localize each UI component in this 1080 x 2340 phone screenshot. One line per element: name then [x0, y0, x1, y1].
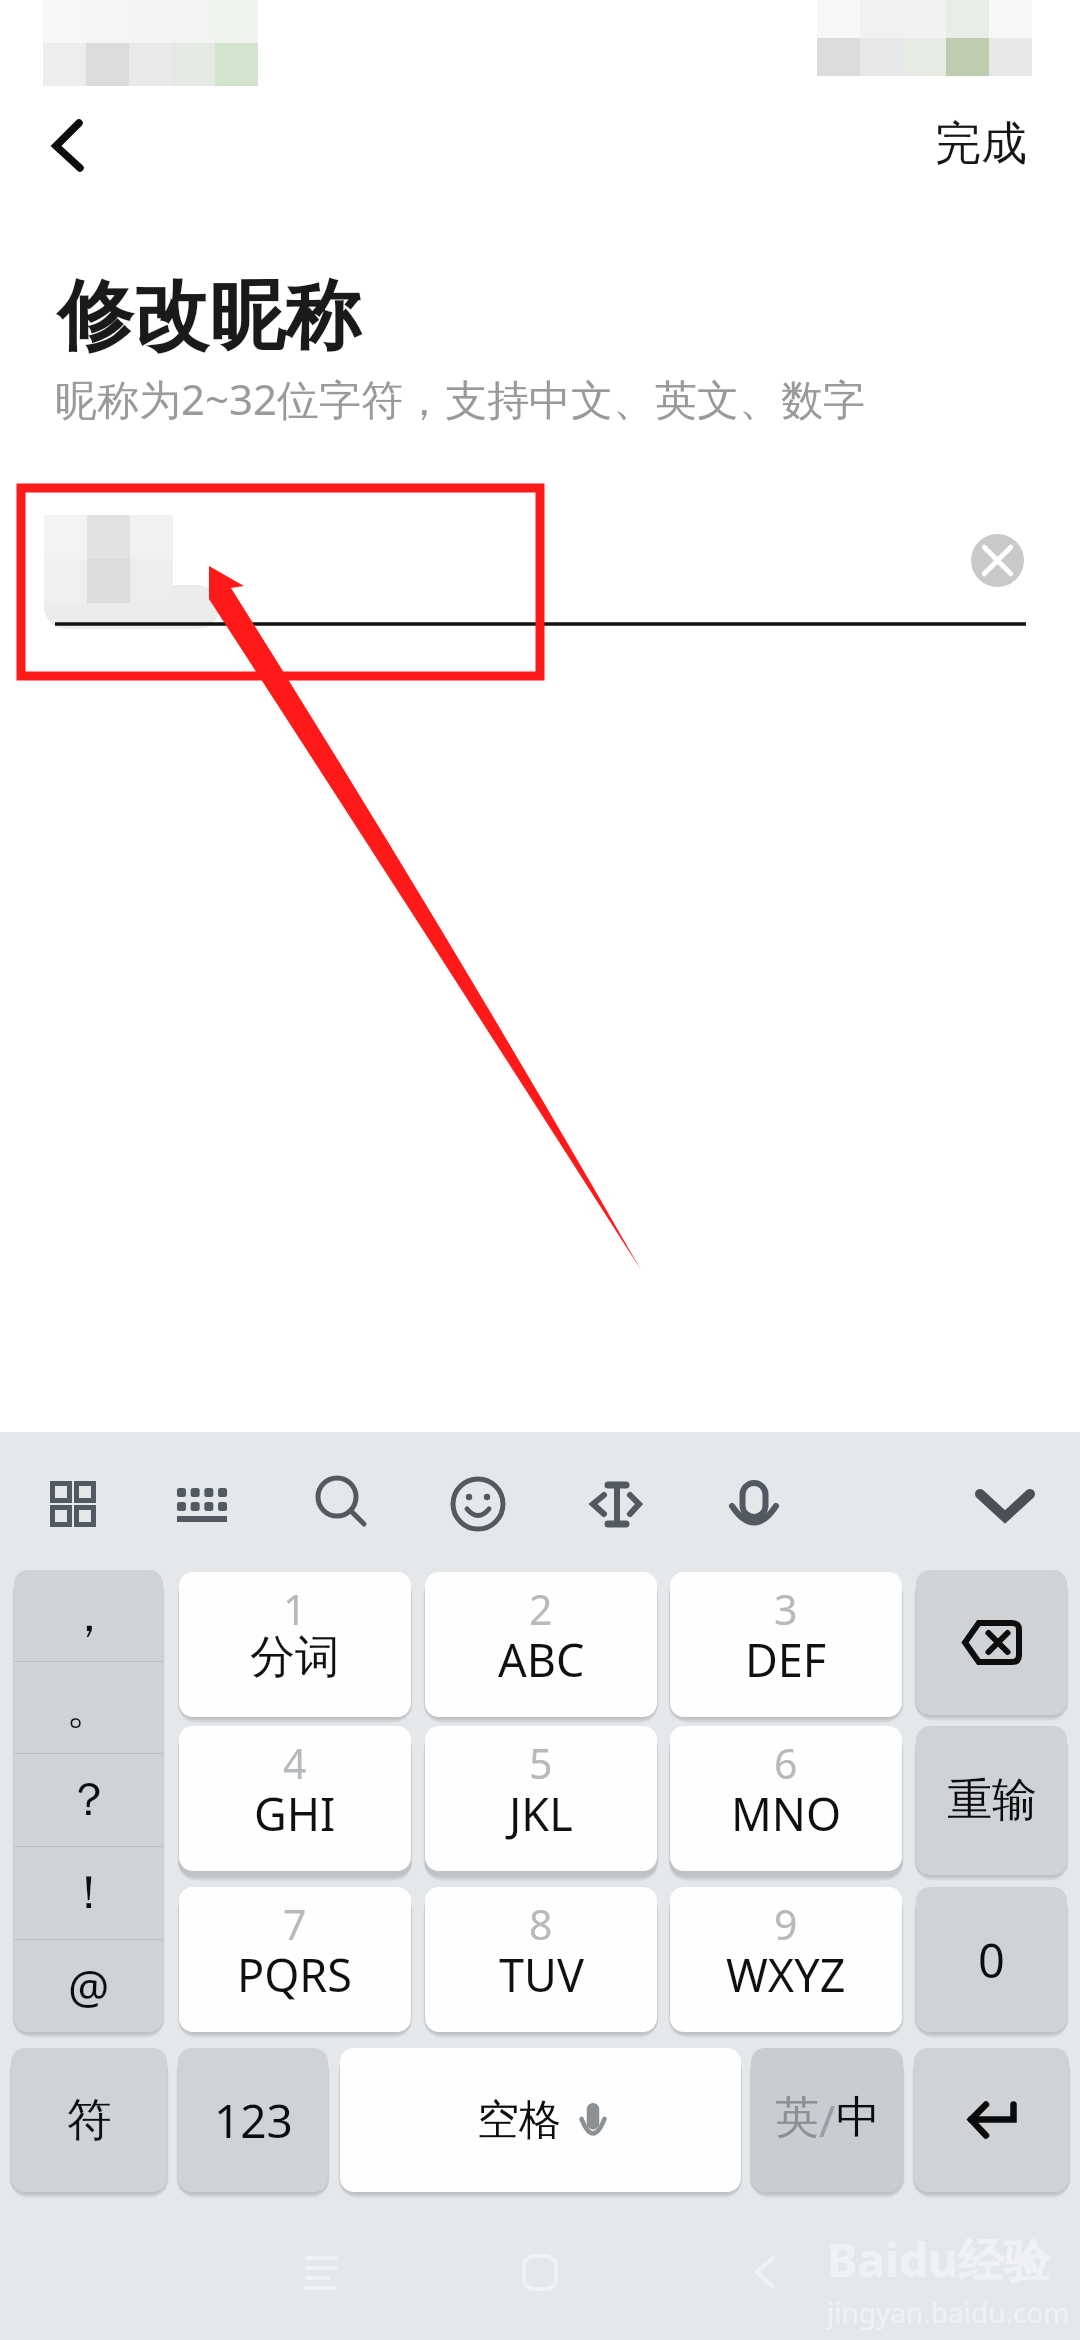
staticText: 8: [529, 1896, 553, 1952]
button[interactable]: 9: [670, 1887, 902, 2032]
button[interactable]: 完成: [908, 96, 1053, 192]
staticText: 0: [978, 1928, 1005, 1992]
button[interactable]: 符: [11, 2048, 167, 2192]
button[interactable]: Apps: [25, 1456, 121, 1552]
button[interactable]: Enter: [914, 2048, 1069, 2192]
staticText: 1: [283, 1581, 307, 1637]
button[interactable]: 2: [425, 1572, 657, 1717]
button[interactable]: ，: [14, 1570, 163, 1661]
button[interactable]: 。: [14, 1662, 163, 1753]
staticText: 。: [66, 1679, 112, 1737]
button[interactable]: 3: [670, 1572, 902, 1717]
staticText: ，: [66, 1587, 112, 1645]
staticText: 英: [775, 2090, 819, 2145]
button[interactable]: Clear: [971, 534, 1024, 587]
staticText: 3: [774, 1581, 798, 1637]
button[interactable]: Search: [292, 1456, 388, 1552]
staticText: 重输: [947, 1772, 1037, 1829]
button[interactable]: Hide keyboard: [957, 1456, 1053, 1552]
staticText: 7: [283, 1896, 307, 1952]
staticText: 6: [774, 1735, 798, 1791]
staticText: 空格: [477, 2094, 561, 2147]
button[interactable]: Back: [20, 98, 116, 194]
button[interactable]: Emoji: [430, 1456, 526, 1552]
button[interactable]: 123: [178, 2048, 328, 2192]
button[interactable]: Backspace: [916, 1570, 1067, 1715]
button[interactable]: 5: [425, 1726, 657, 1871]
staticText: 完成: [935, 115, 1027, 173]
button[interactable]: Keyboard layout: [154, 1456, 250, 1552]
button[interactable]: 7: [179, 1887, 411, 2032]
staticText: 9: [774, 1896, 798, 1952]
staticText: JKL: [509, 1783, 573, 1844]
staticText: 分词: [250, 1629, 340, 1686]
staticText: ？: [66, 1771, 112, 1829]
button[interactable]: Voice input: [706, 1456, 802, 1552]
staticText: 5: [529, 1735, 553, 1791]
staticText: DEF: [745, 1629, 827, 1690]
button[interactable]: ！: [14, 1847, 163, 1939]
button[interactable]: 4: [179, 1726, 411, 1871]
staticText: /: [819, 2090, 836, 2150]
staticText: MNO: [731, 1783, 842, 1844]
button[interactable]: @: [14, 1940, 163, 2032]
staticText: Baidu经验: [827, 2228, 1050, 2291]
button[interactable]: ？: [14, 1754, 163, 1846]
staticText: 修改昵称: [57, 269, 361, 365]
staticText: ABC: [498, 1629, 585, 1690]
staticText: @: [68, 1955, 110, 2018]
staticText: GHI: [254, 1783, 336, 1844]
staticText: TUV: [499, 1944, 584, 2005]
staticText: 4: [283, 1735, 307, 1791]
button[interactable]: 0: [916, 1887, 1067, 2032]
button[interactable]: 空格: [340, 2048, 741, 2192]
staticText: jingyan.baidu.com: [827, 2293, 1070, 2331]
button[interactable]: 8: [425, 1887, 657, 2032]
staticText: PQRS: [237, 1944, 353, 2005]
staticText: 123: [214, 2089, 293, 2152]
button[interactable]: 6: [670, 1726, 902, 1871]
button[interactable]: 英: [751, 2048, 903, 2192]
staticText: 符: [67, 2092, 112, 2149]
staticText: ！: [66, 1864, 112, 1922]
button[interactable]: 重输: [916, 1726, 1067, 1875]
staticText: 2: [529, 1581, 553, 1637]
button[interactable]: 1: [179, 1572, 411, 1717]
staticText: 中: [836, 2090, 880, 2145]
button[interactable]: Move cursor: [568, 1456, 664, 1552]
staticText: WXYZ: [726, 1944, 846, 2005]
staticText: 昵称为2~32位字符，支持中文、英文、数字: [55, 370, 866, 427]
